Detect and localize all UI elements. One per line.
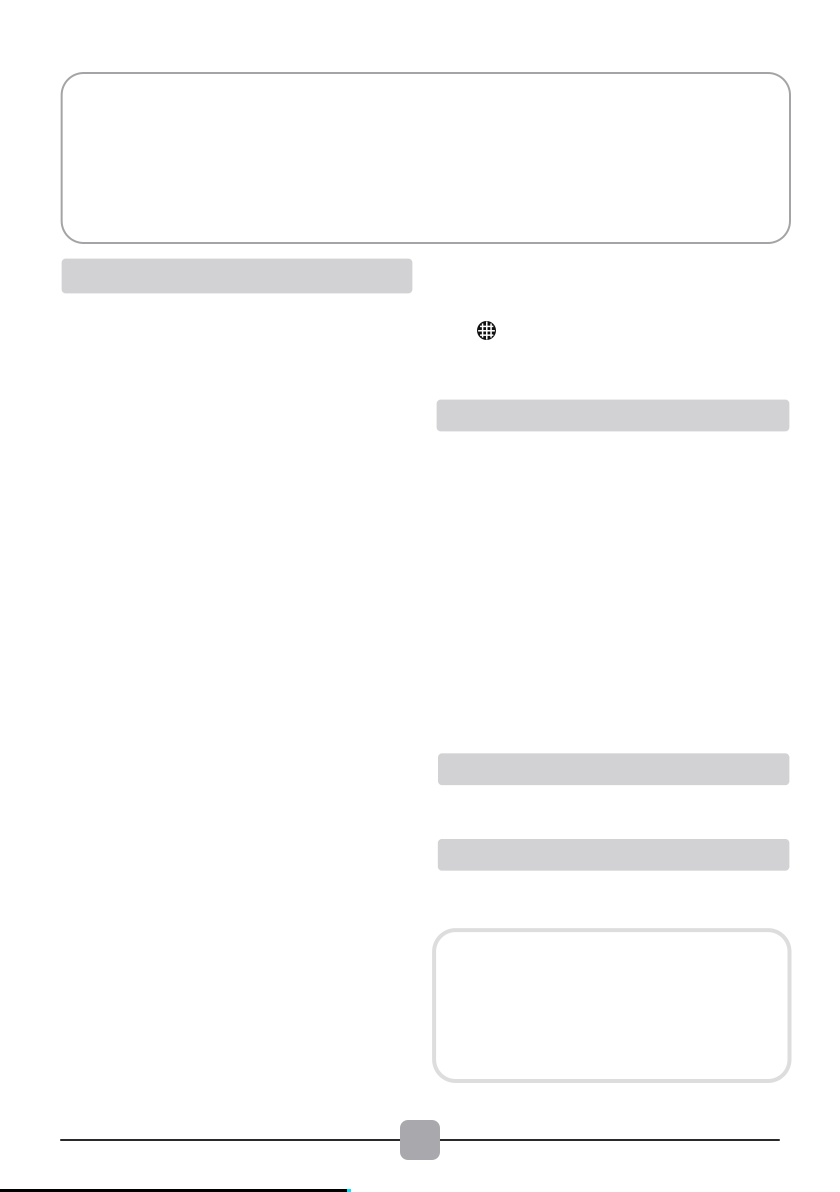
button[interactable]: Secondary card [434, 930, 789, 1081]
button[interactable]: Primary card [62, 73, 790, 243]
button[interactable]: Language [477, 321, 496, 340]
button[interactable]: Slider handle [400, 1120, 440, 1160]
